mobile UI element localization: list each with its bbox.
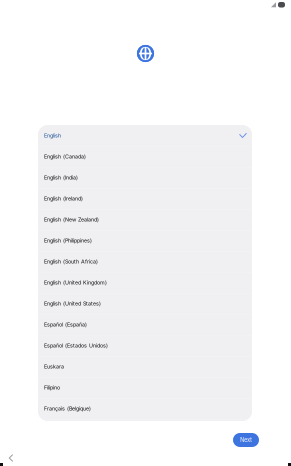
button[interactable]: Español (Estados Unidos): [38, 335, 252, 356]
staticText: Español (España): [44, 321, 87, 328]
button[interactable]: Français (Belgique): [38, 398, 252, 419]
button[interactable]: English (Canada): [38, 146, 252, 167]
staticText: English (United Kingdom): [44, 279, 107, 286]
button[interactable]: Back: [4, 451, 18, 465]
button[interactable]: Español (España): [38, 314, 252, 335]
staticText: English (India): [44, 174, 78, 181]
staticText: Français (Belgique): [44, 405, 91, 412]
staticText: English (South Africa): [44, 258, 98, 265]
button[interactable]: English (India): [38, 167, 252, 188]
staticText: Next: [240, 437, 252, 443]
button[interactable]: Français (Canada): [38, 419, 252, 440]
button[interactable]: English (United States): [38, 293, 252, 314]
button[interactable]: English (Ireland): [38, 188, 252, 209]
staticText: English (Philippines): [44, 237, 92, 244]
staticText: English (Ireland): [44, 195, 83, 202]
staticText: Español (Estados Unidos): [44, 342, 108, 349]
staticText: English: [44, 132, 61, 139]
staticText: English (Canada): [44, 153, 86, 160]
button[interactable]: English (United Kingdom): [38, 272, 252, 293]
staticText: Filipino: [44, 384, 60, 391]
staticText: Euskara: [44, 363, 64, 370]
button[interactable]: English (Philippines): [38, 230, 252, 251]
button[interactable]: English: [38, 125, 252, 146]
button[interactable]: Next: [233, 433, 259, 447]
button[interactable]: English (South Africa): [38, 251, 252, 272]
staticText: English (United States): [44, 300, 101, 307]
button[interactable]: Euskara: [38, 356, 252, 377]
button[interactable]: English (New Zealand): [38, 209, 252, 230]
staticText: English (New Zealand): [44, 216, 99, 223]
button[interactable]: Filipino: [38, 377, 252, 398]
